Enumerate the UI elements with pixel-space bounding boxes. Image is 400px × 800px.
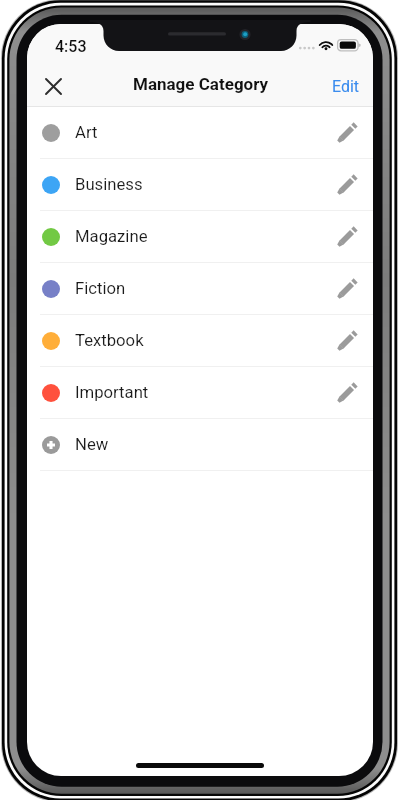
button[interactable]: Edit — [325, 70, 367, 103]
button[interactable]: Edit Magazine — [325, 215, 369, 259]
staticText: New — [75, 435, 109, 455]
button[interactable]: New — [27, 419, 373, 471]
staticText: Manage Category — [133, 74, 269, 94]
button[interactable]: Fiction — [27, 263, 373, 315]
staticText: Business — [75, 175, 143, 195]
staticText: 4:53 — [55, 37, 87, 56]
button[interactable]: Textbook — [27, 315, 373, 367]
button[interactable]: Edit Fiction — [325, 267, 369, 311]
button[interactable]: Edit Important — [325, 371, 369, 415]
button[interactable]: Business — [27, 159, 373, 211]
button[interactable]: Edit Business — [325, 163, 369, 207]
button[interactable]: Magazine — [27, 211, 373, 263]
button[interactable]: Close — [34, 67, 72, 105]
staticText: Important — [75, 383, 149, 403]
staticText: Fiction — [75, 279, 126, 299]
button[interactable]: Edit Art — [325, 111, 369, 155]
button[interactable]: Edit Textbook — [325, 319, 369, 363]
staticText: Edit — [332, 77, 360, 96]
staticText: Textbook — [75, 331, 144, 351]
button[interactable]: Art — [27, 107, 373, 159]
button[interactable]: Important — [27, 367, 373, 419]
staticText: Art — [75, 123, 98, 143]
staticText: Magazine — [75, 227, 148, 247]
